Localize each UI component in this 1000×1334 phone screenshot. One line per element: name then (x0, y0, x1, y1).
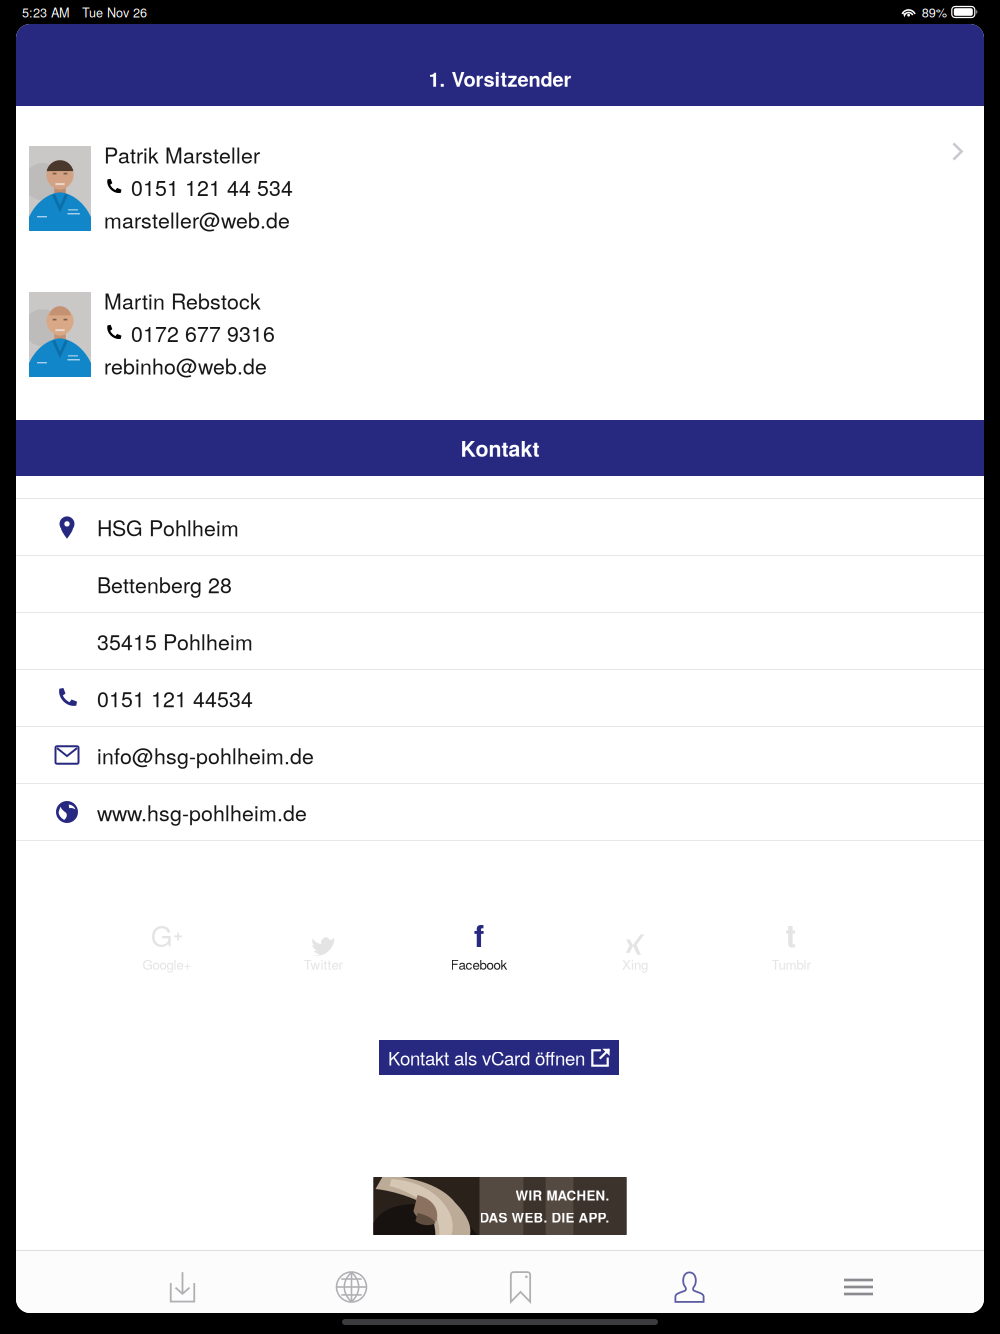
button[interactable]: HSG Pohlheim (16, 499, 984, 556)
staticText: WIR MACHEN. (515, 1185, 609, 1204)
staticText: marsteller@web.de (104, 204, 290, 234)
staticText: 5:23 AM (22, 3, 70, 21)
staticText: Tue Nov 26 (82, 3, 147, 21)
button[interactable]: Web (267, 1251, 436, 1313)
staticText: 0151 121 44 534 (131, 171, 293, 202)
staticText: Kontakt (460, 433, 539, 463)
button[interactable]: Menu (774, 1251, 943, 1313)
button[interactable]: 0151 121 44534 (16, 670, 984, 727)
button[interactable]: 35415 Pohlheim (16, 613, 984, 670)
staticText: Martin Rebstock (104, 285, 261, 315)
staticText: 0172 677 9316 (131, 317, 275, 348)
staticText: rebinho@web.de (104, 350, 267, 380)
button[interactable]: f (401, 914, 557, 971)
staticText: www.hsg-pohlheim.de (97, 797, 307, 827)
button[interactable]: WIR MACHEN. (373, 1177, 626, 1235)
staticText: Patrik Marsteller (104, 139, 260, 169)
staticText: HSG Pohlheim (97, 512, 239, 542)
staticText: t (785, 912, 796, 957)
staticText: 89% (922, 3, 947, 21)
button[interactable]: Twitter (245, 914, 401, 971)
staticText: G (151, 915, 173, 955)
staticText: Google+ (142, 954, 191, 974)
staticText: Bettenberg 28 (97, 569, 232, 599)
button[interactable]: Bookmarks (436, 1251, 605, 1313)
staticText: info@hsg-pohlheim.de (97, 740, 314, 770)
staticText: DAS WEB. DIE APP. (479, 1207, 609, 1227)
staticText: 1. Vorsitzender (428, 64, 571, 93)
button[interactable]: Xing (557, 914, 713, 971)
button[interactable]: Kontakt als vCard öffnen (379, 1040, 619, 1075)
button[interactable]: Downloads (98, 1251, 267, 1313)
button[interactable]: www.hsg-pohlheim.de (16, 784, 984, 841)
staticText: Twitter (303, 954, 342, 974)
button[interactable]: info@hsg-pohlheim.de (16, 727, 984, 784)
staticText: Facebook (450, 954, 507, 974)
staticText: 35415 Pohlheim (97, 626, 253, 656)
button[interactable]: Patrik Marsteller (16, 106, 984, 420)
button[interactable]: G (89, 914, 245, 971)
button[interactable]: t (713, 914, 869, 971)
staticText: + (173, 922, 183, 946)
staticText: Xing (622, 954, 648, 974)
staticText: Kontakt als vCard öffnen (388, 1044, 585, 1071)
button[interactable]: Bettenberg 28 (16, 556, 984, 613)
staticText: Tumblr (771, 954, 810, 974)
staticText: f (474, 912, 484, 956)
button[interactable]: Profile (605, 1251, 774, 1313)
staticText: 0151 121 44534 (97, 683, 253, 713)
